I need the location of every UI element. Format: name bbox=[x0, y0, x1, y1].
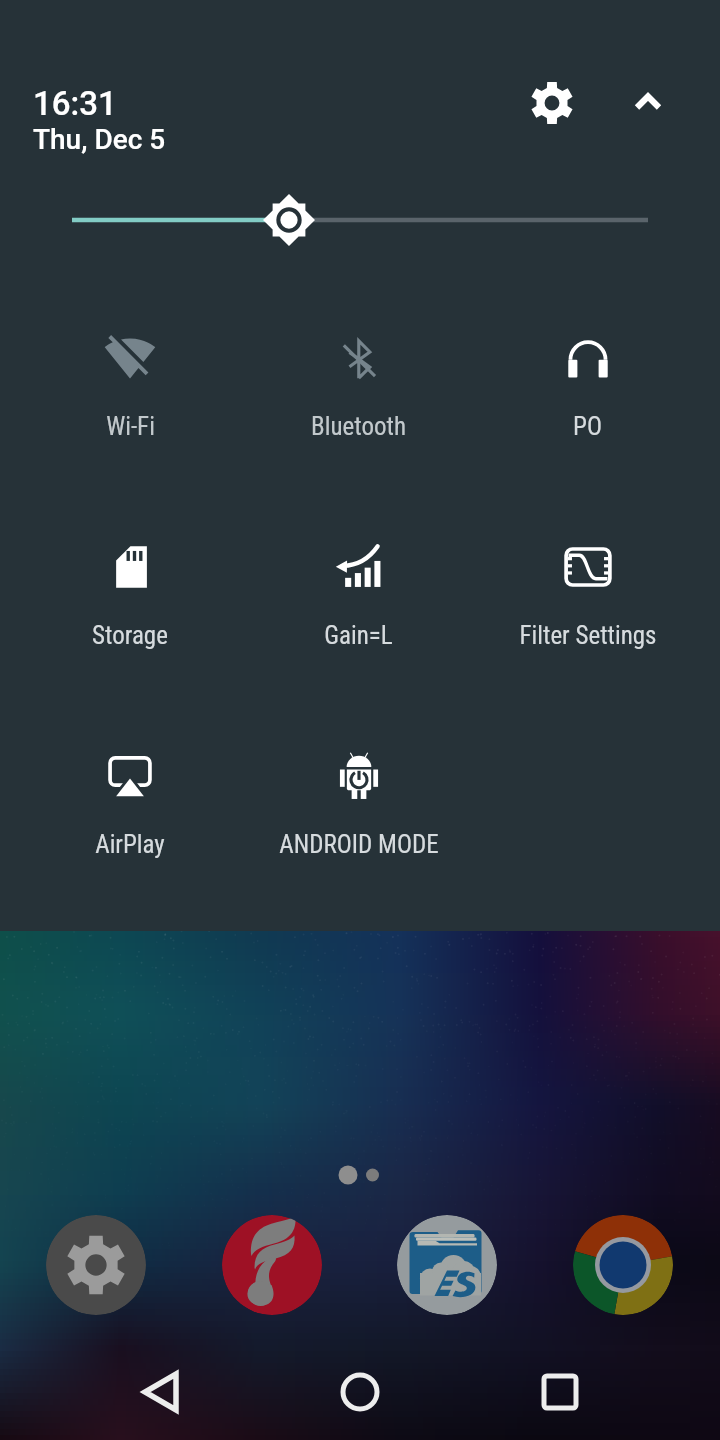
staticText: Gain=L bbox=[324, 621, 393, 650]
button[interactable]: Brightness bbox=[0, 185, 720, 255]
button[interactable]: Bluetooth bbox=[244, 289, 473, 498]
staticText: AirPlay bbox=[95, 830, 165, 859]
button[interactable]: PO bbox=[473, 289, 702, 498]
button[interactable]: Settings bbox=[512, 63, 592, 143]
staticText: Thu, Dec 5 bbox=[33, 123, 166, 156]
staticText: Wi-Fi bbox=[106, 412, 155, 441]
staticText: PO bbox=[573, 412, 602, 441]
button[interactable]: Recent apps bbox=[510, 1342, 610, 1440]
button[interactable]: Gain=L bbox=[244, 498, 473, 707]
button[interactable]: Filter Settings bbox=[473, 498, 702, 707]
button[interactable]: chrome bbox=[573, 1215, 673, 1315]
staticText: Filter Settings bbox=[519, 621, 657, 650]
button[interactable]: Wi-Fi bbox=[16, 289, 244, 498]
button[interactable]: settings bbox=[46, 1215, 146, 1315]
button[interactable]: music bbox=[222, 1215, 322, 1315]
button[interactable]: Collapse bbox=[608, 61, 688, 141]
button[interactable]: ANDROID MODE bbox=[244, 707, 473, 916]
staticText: 16:31 bbox=[33, 84, 117, 123]
button[interactable]: AirPlay bbox=[16, 707, 244, 916]
button[interactable]: Storage bbox=[16, 498, 244, 707]
button[interactable]: Home bbox=[310, 1342, 410, 1440]
staticText: ANDROID MODE bbox=[279, 830, 439, 859]
staticText: Storage bbox=[92, 621, 168, 650]
button[interactable]: Back bbox=[111, 1342, 211, 1440]
button[interactable]: es bbox=[397, 1215, 497, 1315]
staticText: Bluetooth bbox=[311, 412, 406, 441]
